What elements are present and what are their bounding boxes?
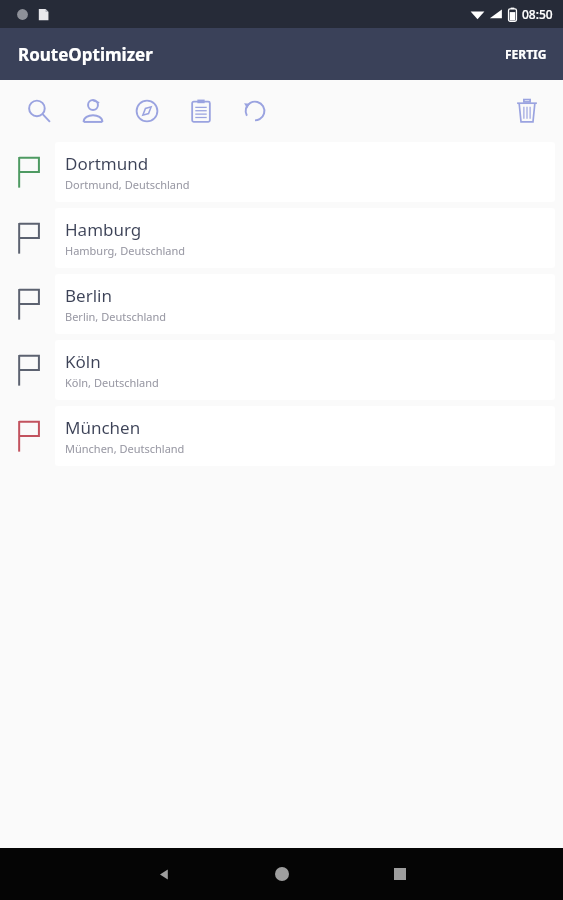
staticText: Köln	[65, 350, 101, 373]
button[interactable]: Navigate	[128, 92, 166, 130]
staticText: Hamburg	[65, 218, 142, 241]
button[interactable]: Undo	[236, 92, 274, 130]
staticText: Dortmund	[65, 152, 149, 175]
button[interactable]: Köln	[0, 340, 563, 400]
staticText: 08:50	[522, 6, 553, 22]
button[interactable]: Delete	[505, 89, 549, 133]
button[interactable]: München	[0, 406, 563, 466]
button[interactable]: Clipboard	[182, 92, 220, 130]
button[interactable]: Home	[252, 848, 312, 900]
button[interactable]: Back	[134, 848, 194, 900]
button[interactable]: Berlin	[0, 274, 563, 334]
button[interactable]: Hamburg	[0, 208, 563, 268]
staticText: München, Deutschland	[65, 441, 185, 456]
button[interactable]: FERTIG	[489, 34, 563, 74]
staticText: FERTIG	[505, 46, 547, 62]
staticText: Berlin, Deutschland	[65, 309, 167, 324]
staticText: RouteOptimizer	[18, 43, 153, 66]
staticText: Berlin	[65, 284, 112, 307]
staticText: Dortmund, Deutschland	[65, 177, 190, 192]
staticText: Hamburg, Deutschland	[65, 243, 186, 258]
button[interactable]: Contacts	[74, 92, 112, 130]
staticText: Köln, Deutschland	[65, 375, 159, 390]
button[interactable]: Dortmund	[0, 142, 563, 202]
staticText: München	[65, 416, 141, 439]
button[interactable]: Search	[20, 92, 58, 130]
button[interactable]: Recent apps	[370, 848, 430, 900]
